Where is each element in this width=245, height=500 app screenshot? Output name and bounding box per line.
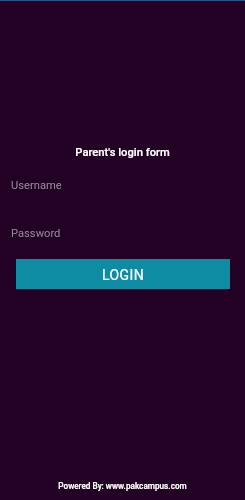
staticText: Username [11,179,62,192]
button[interactable]: Password [0,221,245,245]
button[interactable]: LOGIN [16,259,230,289]
button[interactable]: Username [0,173,245,197]
staticText: LOGIN [102,267,145,283]
staticText: Parent's login form [0,146,245,159]
staticText: Password [11,227,61,240]
button[interactable]: Powered By: www.pakcampus.com [0,481,245,491]
